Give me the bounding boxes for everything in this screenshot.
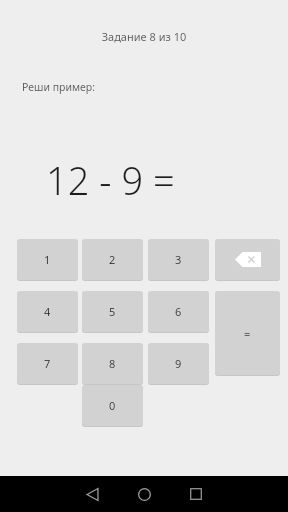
button[interactable]: Backspace [215,239,280,280]
button[interactable]: Home [120,476,168,512]
staticText: 12 - 9 = [46,154,175,206]
button[interactable]: 2 [82,239,143,280]
button[interactable]: Equals [215,291,280,375]
staticText: Реши пример: [22,80,95,94]
staticText: 8 [109,356,116,371]
button[interactable]: 6 [148,291,209,332]
staticText: 9 [175,356,182,371]
staticText: 0 [109,398,116,413]
button[interactable]: 9 [148,343,209,384]
button[interactable]: 0 [82,385,143,426]
staticText: 6 [175,304,182,319]
button[interactable]: 7 [17,343,78,384]
button[interactable]: 5 [82,291,143,332]
staticText: 3 [175,252,182,267]
button[interactable]: 1 [17,239,78,280]
button[interactable]: Back [68,476,116,512]
staticText: 4 [44,304,51,319]
button[interactable]: 8 [82,343,143,384]
staticText: 2 [109,252,116,267]
button[interactable]: Recent apps [172,476,220,512]
staticText: 1 [44,252,51,267]
button[interactable]: 3 [148,239,209,280]
button[interactable]: 4 [17,291,78,332]
staticText: = [244,326,251,341]
staticText: 5 [109,304,116,319]
staticText: Задание 8 из 10 [44,29,244,45]
staticText: 7 [44,356,51,371]
